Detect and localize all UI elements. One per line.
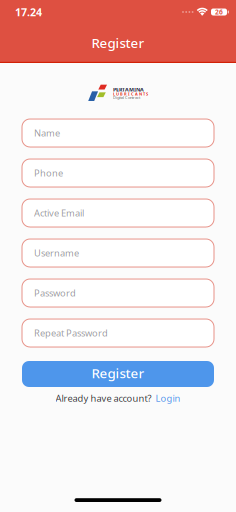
staticText: Already have account? [55, 392, 151, 404]
staticText: PERTAMINA [113, 86, 144, 93]
staticText: L U B R I C A N T S [113, 91, 148, 96]
button[interactable]: Username [22, 239, 214, 267]
button[interactable]: Phone [22, 159, 214, 187]
button[interactable]: Login [155, 392, 180, 404]
staticText: Login [155, 392, 180, 404]
button[interactable]: Repeat Password [22, 319, 214, 347]
staticText: 17.24 [15, 5, 42, 19]
staticText: Phone [34, 167, 63, 179]
button[interactable]: Active Email [22, 199, 214, 227]
staticText: Active Email [34, 207, 84, 219]
staticText: Register [91, 364, 144, 382]
staticText: Name [34, 127, 60, 139]
staticText: Password [34, 287, 76, 299]
staticText: Digital Contract [113, 95, 140, 100]
staticText: Repeat Password [34, 327, 108, 339]
staticText: Register [91, 34, 144, 52]
button[interactable]: Register [22, 361, 214, 387]
staticText: 26 [215, 8, 223, 16]
staticText: Username [34, 247, 79, 259]
button[interactable]: Name [22, 119, 214, 147]
button[interactable]: Password [22, 279, 214, 307]
